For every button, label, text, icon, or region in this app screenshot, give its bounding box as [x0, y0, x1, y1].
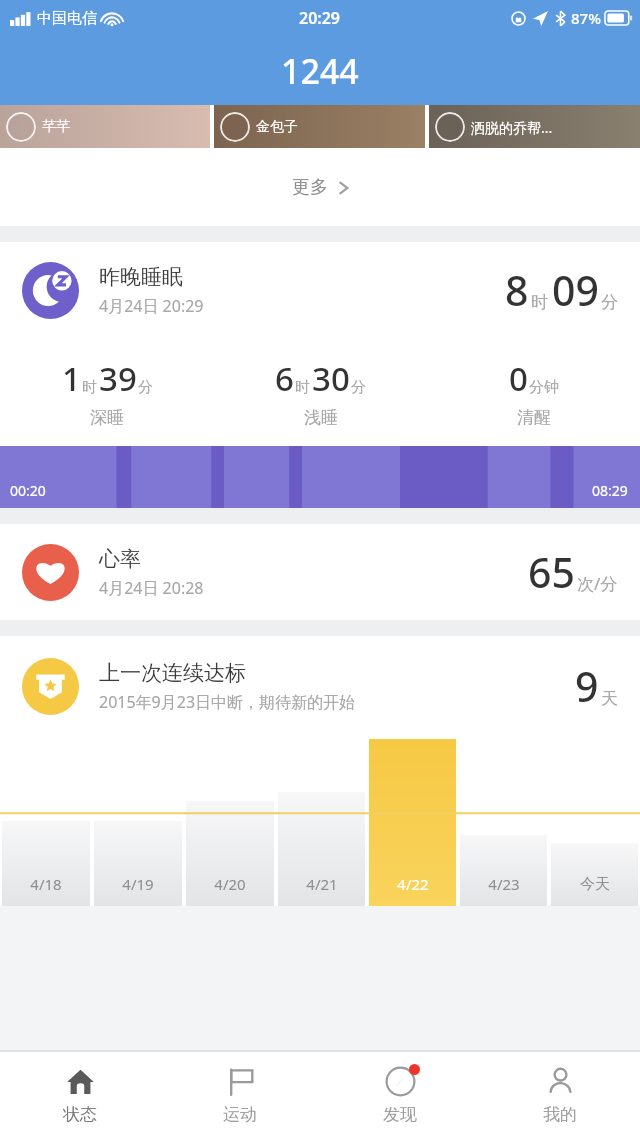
staticText: 状态: [63, 1104, 97, 1125]
staticText: 洒脱的乔帮...: [471, 118, 553, 137]
staticText: 金包子: [256, 118, 298, 136]
staticText: 我的: [543, 1104, 577, 1125]
staticText: 中国电信: [37, 9, 97, 28]
button[interactable]: 金包子: [214, 105, 425, 148]
staticText: 1: [62, 356, 81, 401]
button[interactable]: 4/20: [184, 736, 276, 906]
staticText: 4/18: [30, 874, 62, 894]
button[interactable]: 1244: [0, 36, 640, 105]
button[interactable]: 状态: [0, 1052, 160, 1138]
staticText: 6: [275, 356, 294, 401]
button[interactable]: 4/23: [458, 736, 549, 906]
button[interactable]: 运动: [160, 1052, 320, 1138]
button[interactable]: 心率: [0, 524, 640, 620]
staticText: 87%: [571, 8, 601, 28]
button[interactable]: 昨晚睡眠: [0, 242, 640, 338]
staticText: 深睡: [90, 407, 124, 428]
staticText: 4/21: [306, 874, 338, 894]
staticText: 发现: [383, 1104, 417, 1125]
staticText: 上一次连续达标: [99, 660, 246, 686]
button[interactable]: 6: [214, 338, 427, 446]
staticText: 运动: [223, 1104, 257, 1125]
button[interactable]: 我的: [480, 1052, 640, 1138]
staticText: 9: [575, 658, 599, 714]
staticText: 4/20: [214, 874, 246, 894]
staticText: 39: [99, 356, 137, 401]
button[interactable]: 4/22: [367, 736, 458, 906]
button[interactable]: 更多: [0, 148, 640, 226]
staticText: 4月24日 20:28: [99, 577, 204, 599]
staticText: 30: [312, 356, 350, 401]
staticText: 分: [351, 378, 366, 397]
staticText: 4/19: [122, 874, 154, 894]
staticText: 4月24日 20:29: [99, 295, 204, 317]
button[interactable]: 00:20: [0, 446, 640, 508]
staticText: 20:29: [299, 7, 341, 29]
staticText: 00:20: [10, 481, 46, 500]
staticText: 心率: [99, 546, 141, 572]
button[interactable]: 0: [427, 338, 640, 446]
button[interactable]: 芊芊: [0, 105, 210, 148]
button[interactable]: 上一次连续达标: [0, 636, 640, 736]
staticText: 时: [295, 378, 310, 397]
staticText: 分: [138, 378, 153, 397]
staticText: 2015年9月23日中断，期待新的开始: [99, 691, 356, 713]
button[interactable]: 洒脱的乔帮...: [429, 105, 640, 148]
button[interactable]: 4/21: [276, 736, 367, 906]
staticText: 清醒: [517, 407, 551, 428]
button[interactable]: 发现: [320, 1052, 480, 1138]
staticText: 天: [601, 688, 618, 709]
staticText: 08:29: [592, 481, 628, 500]
button[interactable]: 4/19: [92, 736, 184, 906]
staticText: 4/22: [397, 874, 429, 894]
staticText: 昨晚睡眠: [99, 264, 183, 290]
staticText: 今天: [580, 875, 610, 894]
staticText: 8: [505, 262, 529, 318]
button[interactable]: 4/18: [0, 736, 92, 906]
staticText: 次/分: [577, 572, 618, 595]
staticText: 0: [509, 356, 528, 401]
staticText: 分: [601, 292, 618, 313]
staticText: 浅睡: [304, 407, 338, 428]
staticText: 分钟: [529, 378, 559, 397]
staticText: 1244: [281, 48, 359, 94]
staticText: 09: [552, 262, 599, 318]
staticText: 时: [82, 378, 97, 397]
button[interactable]: 今天: [549, 736, 640, 906]
staticText: 时: [531, 292, 548, 313]
staticText: 65: [528, 544, 575, 600]
button[interactable]: 1: [0, 338, 214, 446]
staticText: 4/23: [488, 874, 520, 894]
staticText: 更多: [292, 176, 328, 199]
staticText: 芊芊: [42, 118, 70, 136]
